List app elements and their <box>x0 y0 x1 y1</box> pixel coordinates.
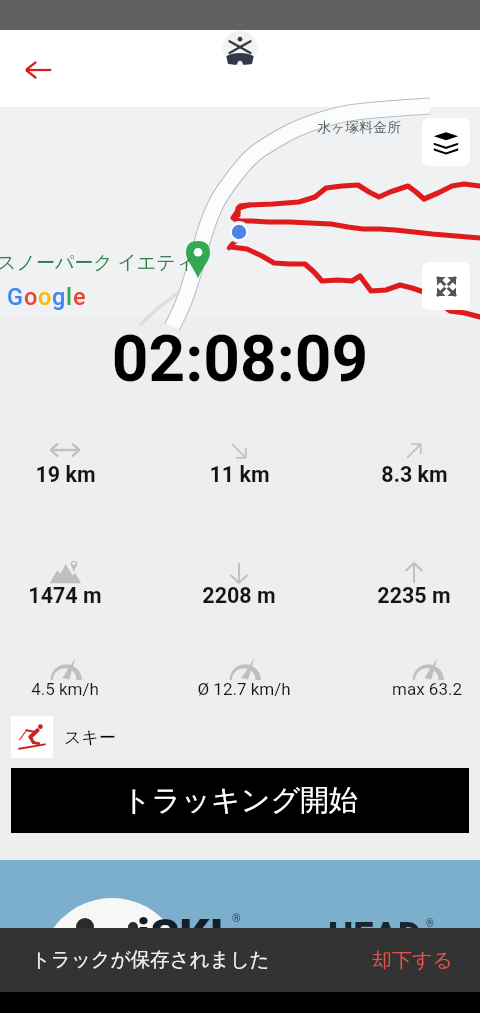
staticText: 19 km <box>35 462 96 487</box>
staticText: o <box>24 283 38 311</box>
staticText: 8.3 km <box>381 462 448 487</box>
button[interactable]: トラッキング開始 <box>11 768 469 833</box>
staticText: e <box>73 283 86 311</box>
staticText: 水ヶ塚料金所 <box>317 119 402 137</box>
staticText: 却下する <box>372 948 453 973</box>
staticText: o <box>38 283 52 311</box>
staticText: l <box>66 283 73 311</box>
staticText: 02:08:09 <box>0 322 480 397</box>
staticText: G <box>7 283 24 311</box>
staticText: トラックが保存されました <box>31 947 270 972</box>
staticText: max 63.2 <box>392 679 462 699</box>
staticText: 4.5 km/h <box>31 679 99 699</box>
staticText: Ø 12.7 km/h <box>197 679 291 699</box>
staticText: 1474 m <box>28 583 102 608</box>
staticText: スキー <box>64 727 116 748</box>
staticText: ® <box>426 918 434 930</box>
staticText: スノーパーク イエティ <box>0 251 196 275</box>
staticText: g <box>52 283 66 311</box>
button[interactable]: Fullscreen map <box>422 262 470 310</box>
staticText: ® <box>232 912 241 925</box>
button[interactable]: Back <box>16 48 60 92</box>
staticText: 2208 m <box>202 583 276 608</box>
button[interactable]: Map layers <box>422 118 470 166</box>
button[interactable]: スキー <box>11 716 116 758</box>
staticText: iSKI <box>137 908 224 963</box>
staticText: 2235 m <box>377 583 451 608</box>
staticText: HEAD <box>328 915 422 957</box>
staticText: トラッキング開始 <box>122 782 359 819</box>
button[interactable]: 却下する <box>366 942 459 979</box>
staticText: 11 km <box>209 462 270 487</box>
